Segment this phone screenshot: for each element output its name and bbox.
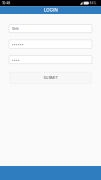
button[interactable]: Confirm password — [9, 55, 92, 64]
staticText: LOGIN — [44, 7, 57, 13]
button[interactable]: SUBMIT — [0, 64, 101, 83]
button[interactable]: Password — [9, 40, 92, 48]
staticText: SUBMIT — [43, 75, 57, 80]
staticText: 84% — [89, 1, 96, 5]
staticText: Gate — [12, 27, 19, 31]
staticText: •••• — [12, 58, 20, 62]
button[interactable]: Username — [9, 24, 92, 33]
staticText: 10:48 — [2, 1, 10, 5]
staticText: •••••• — [12, 42, 24, 46]
